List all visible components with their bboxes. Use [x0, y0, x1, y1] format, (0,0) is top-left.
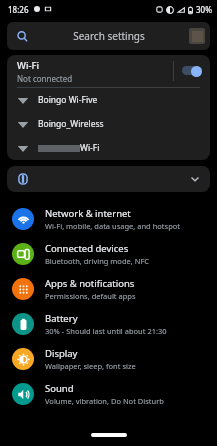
- staticText: Bluetooth, driving mode, NFC: [45, 256, 150, 266]
- button[interactable]: Connected devices: [0, 236, 217, 271]
- staticText: 30% - Should last until about 21:30: [45, 326, 167, 336]
- staticText: Permissions, default apps: [45, 291, 136, 301]
- button[interactable]: Display: [0, 341, 217, 376]
- button[interactable]: Boingo_Wireless: [7, 112, 210, 136]
- staticText: Wi-Fi: [80, 142, 100, 154]
- staticText: Sound: [45, 382, 74, 395]
- staticText: Network & internet: [45, 207, 131, 220]
- button[interactable]: Account: [189, 28, 205, 44]
- staticText: Battery: [45, 312, 78, 325]
- button[interactable]: Wi-Fi: [7, 55, 210, 87]
- staticText: Connected devices: [45, 242, 129, 255]
- button[interactable]: Search settings: [7, 22, 210, 50]
- staticText: Search settings: [73, 29, 145, 43]
- button[interactable]: Apps & notifications: [0, 271, 217, 306]
- staticText: Wi-Fi, mobile, data usage, and hotspot: [45, 221, 180, 231]
- staticText: Display: [45, 347, 78, 360]
- staticText: Boingo_Wireless: [38, 118, 104, 130]
- button[interactable]: Network & internet: [0, 201, 217, 236]
- button[interactable]: Sound: [0, 376, 217, 411]
- staticText: Not connected: [17, 73, 73, 84]
- button[interactable]: Battery: [0, 306, 217, 341]
- staticText: 30%: [196, 4, 212, 15]
- staticText: Wi-Fi: [17, 59, 40, 72]
- button[interactable]: Wi-Fi: [7, 136, 210, 160]
- button[interactable]: Wi-Fi toggle: [182, 66, 202, 77]
- button[interactable]: Boingo Wi-Five: [7, 88, 210, 112]
- staticText: Volume, vibration, Do Not Disturb: [45, 396, 164, 406]
- staticText: Boingo Wi-Five: [38, 94, 98, 106]
- button[interactable]: Suggestions: [7, 166, 210, 192]
- staticText: Apps & notifications: [45, 277, 135, 290]
- staticText: 18:26: [8, 4, 29, 15]
- staticText: Wallpaper, sleep, font size: [45, 361, 136, 371]
